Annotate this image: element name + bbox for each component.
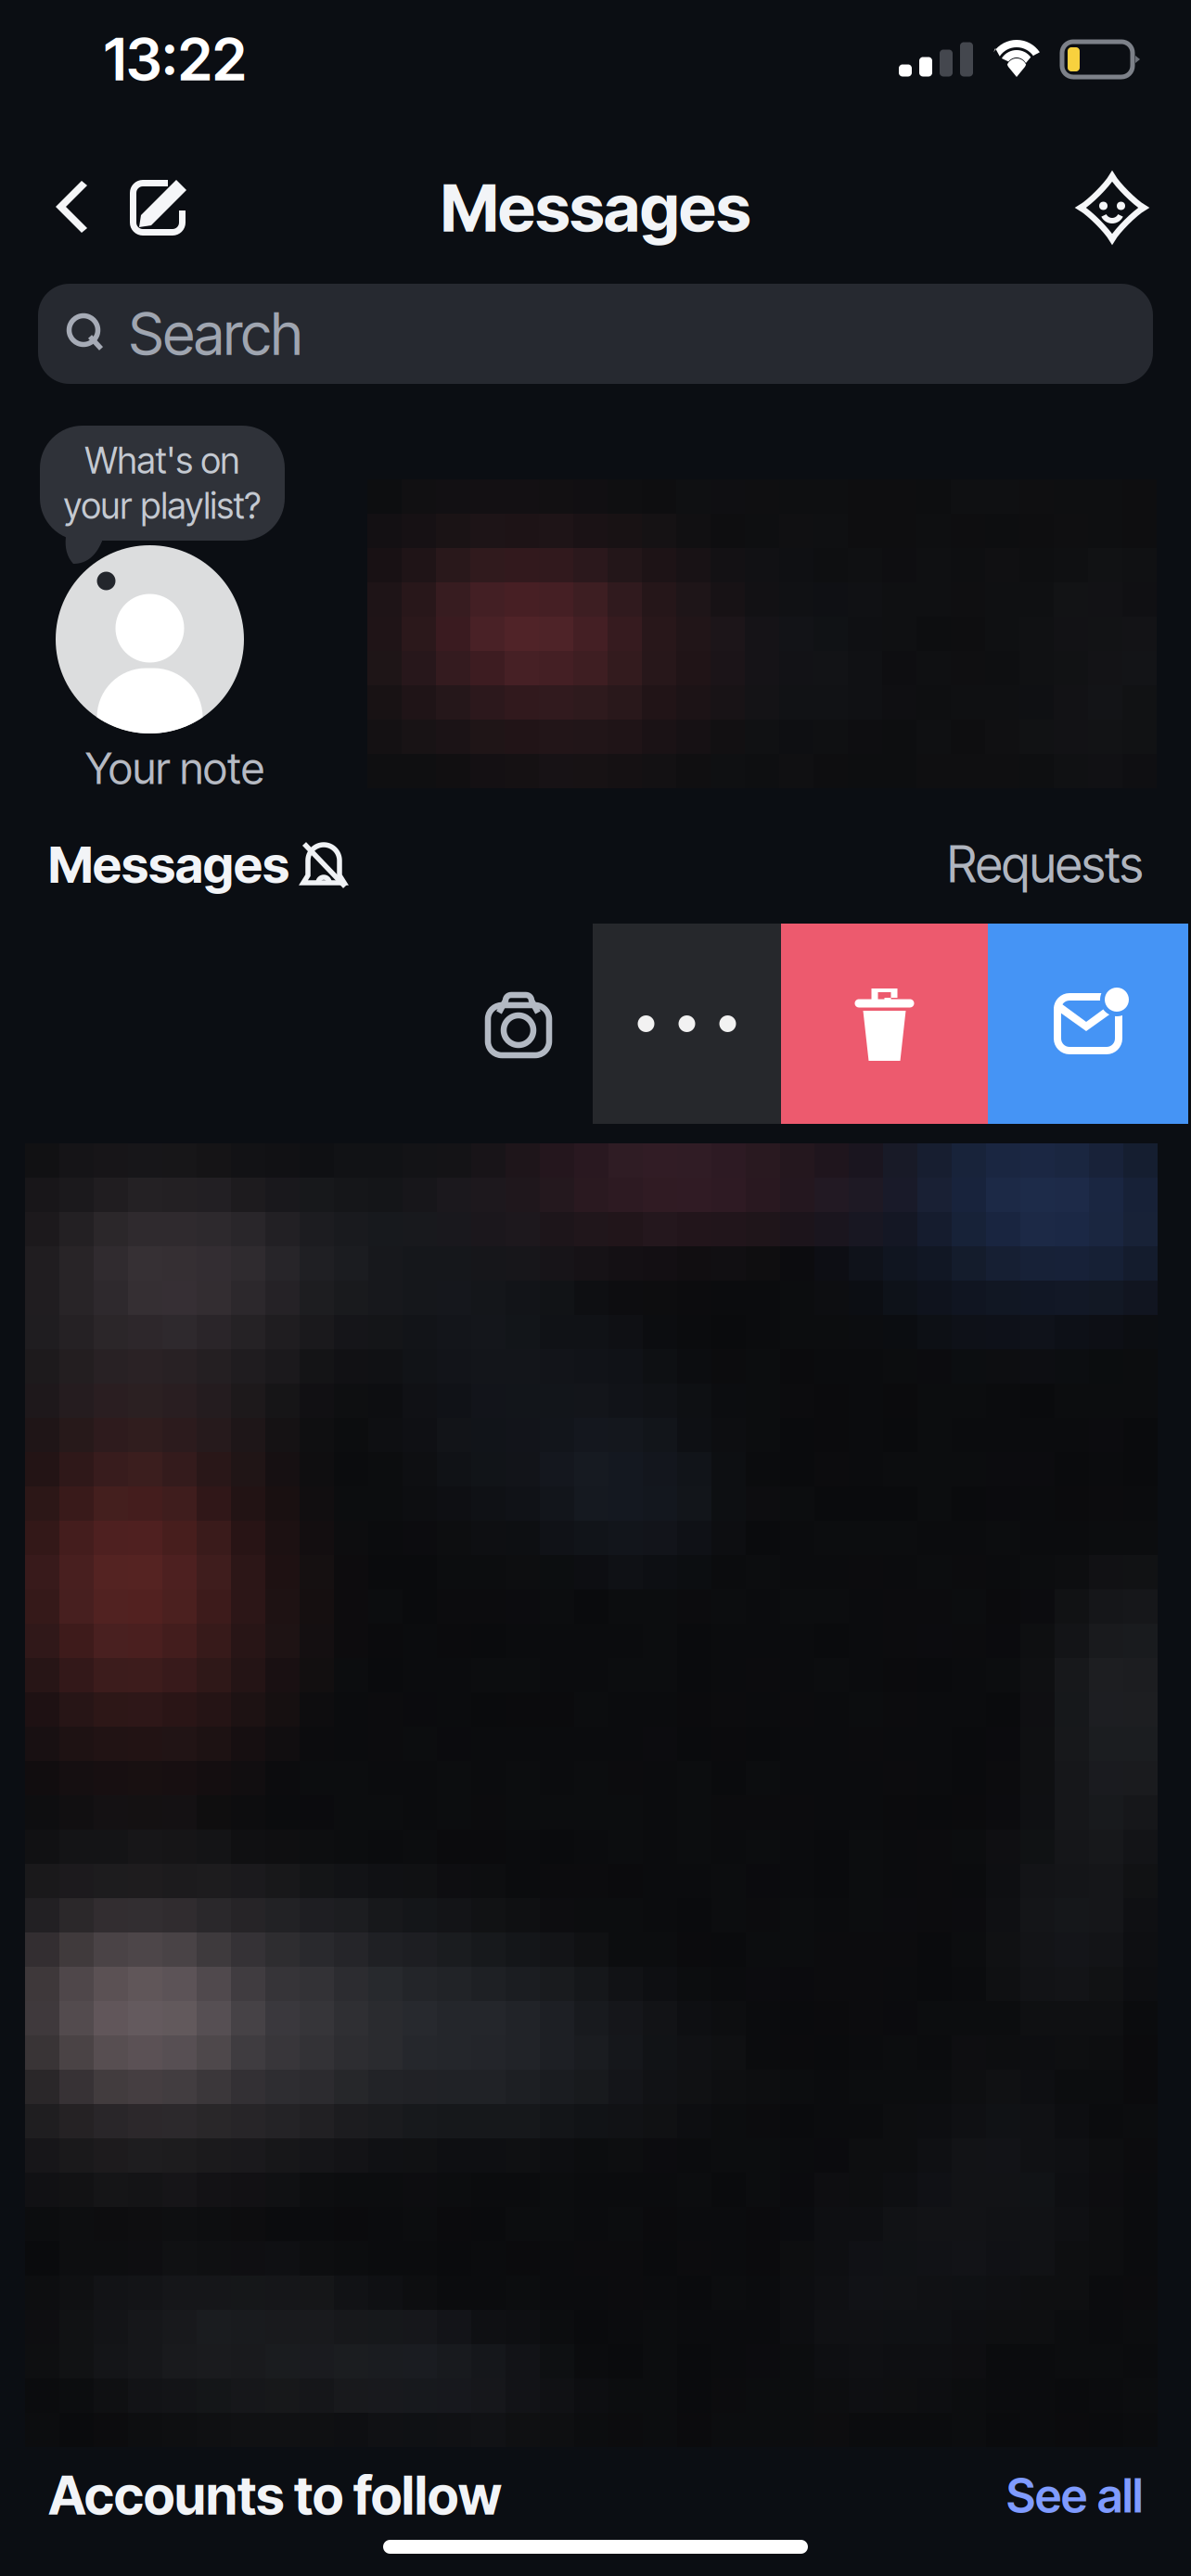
button[interactable]: More <box>593 924 781 1124</box>
button[interactable]: Camera <box>444 924 593 1124</box>
button[interactable]: Search <box>38 284 1153 384</box>
button[interactable]: Your note <box>40 429 285 793</box>
staticText: your playlist? <box>64 484 261 527</box>
staticText: Your note <box>85 742 264 794</box>
button[interactable]: Requests <box>947 834 1191 894</box>
staticText: Search <box>129 299 302 369</box>
staticText: Accounts to follow <box>48 2463 502 2528</box>
button[interactable]: New message <box>122 158 193 258</box>
staticText: 13:22 <box>104 24 247 94</box>
button[interactable]: Messages <box>0 834 347 895</box>
button[interactable]: Delete <box>781 924 988 1124</box>
staticText: Messages <box>48 834 289 895</box>
button[interactable]: See all <box>1006 2467 1191 2524</box>
button[interactable]: Mark unread <box>988 924 1188 1124</box>
staticText: Messages <box>441 168 750 247</box>
staticText: What's on <box>85 439 240 482</box>
staticText: Requests <box>947 834 1143 894</box>
button[interactable]: Back <box>48 158 102 258</box>
staticText: See all <box>1006 2467 1143 2524</box>
button[interactable]: Meta AI <box>1072 158 1152 258</box>
